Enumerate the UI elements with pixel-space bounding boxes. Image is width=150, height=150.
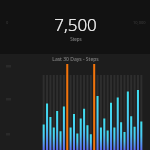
staticText: 10,000 [133,20,146,25]
button[interactable]: Last 30 Days - Steps [0,54,150,150]
staticText: Steps [70,36,82,42]
staticText: 7,500 [54,13,97,36]
other: Step history chart [0,54,150,150]
staticText: Last 30 Days - Steps [52,56,99,63]
staticText: 0 [6,20,9,25]
button[interactable]: 0 [0,0,150,54]
